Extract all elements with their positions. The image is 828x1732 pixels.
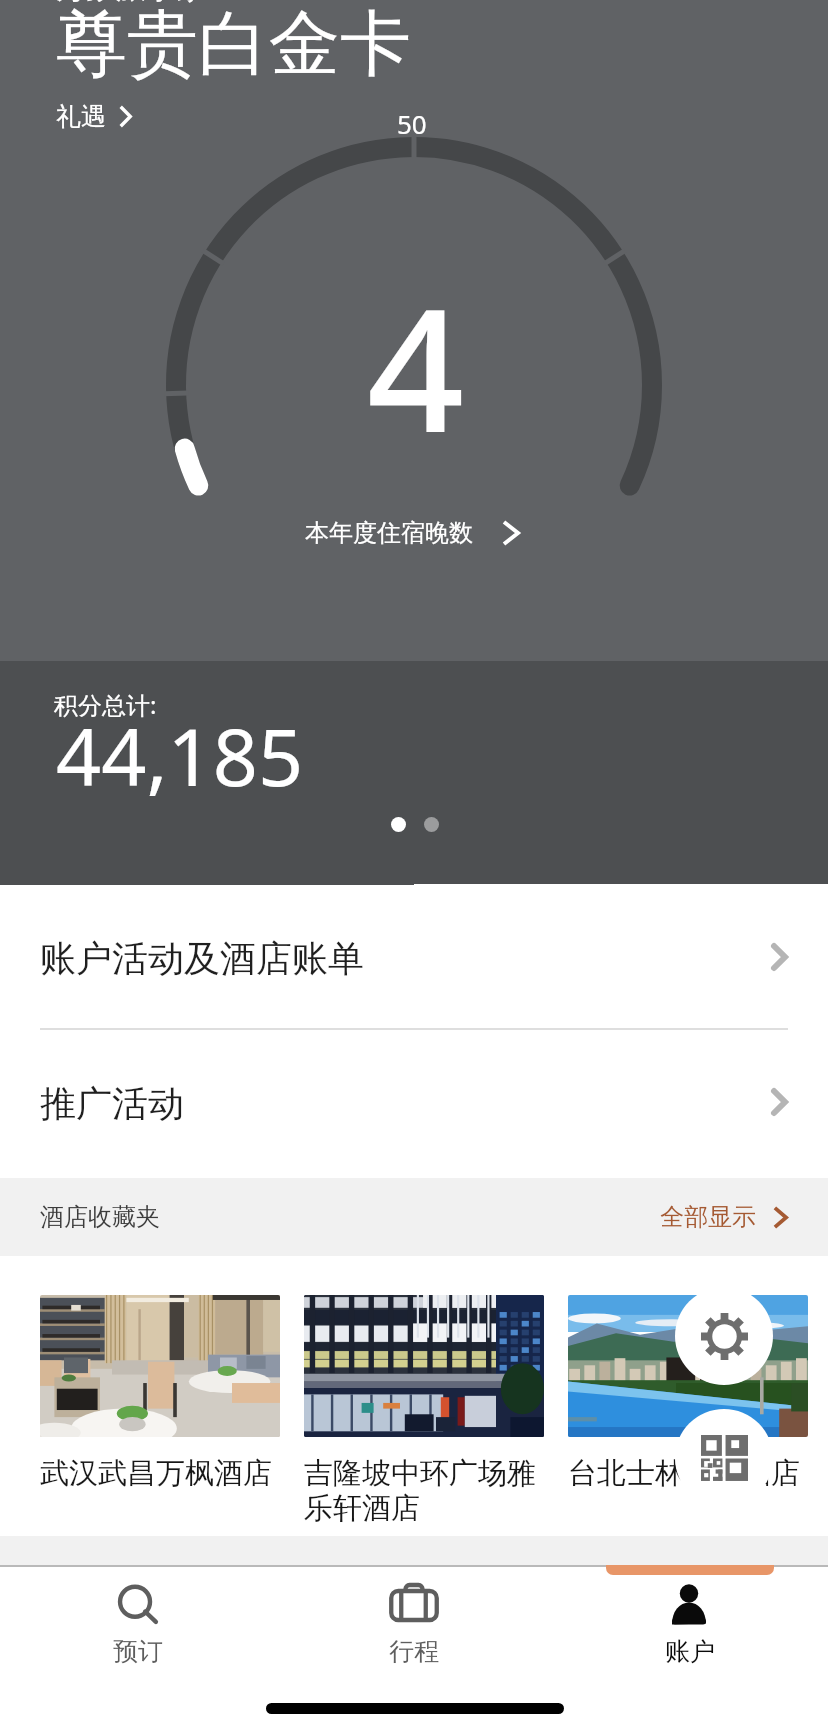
button[interactable]: 账户 bbox=[552, 1578, 828, 1668]
staticText: 推广活动 bbox=[40, 1081, 184, 1126]
staticText: 武汉武昌万枫酒店 bbox=[40, 1455, 320, 1492]
button[interactable]: 礼遇 bbox=[56, 97, 144, 136]
button[interactable]: 推广活动 bbox=[0, 1030, 828, 1173]
button[interactable]: Settings bbox=[675, 1287, 773, 1385]
staticText: 账户 bbox=[665, 1636, 715, 1667]
staticText: 台北士林万丽酒店 bbox=[568, 1455, 828, 1492]
staticText: 4 bbox=[367, 250, 465, 482]
button[interactable]: 账户活动及酒店账单 bbox=[0, 885, 828, 1028]
staticText: 积分总计: bbox=[54, 688, 157, 721]
staticText: 吉隆坡中环广场雅乐轩酒店 bbox=[304, 1455, 554, 1527]
staticText: 行程 bbox=[389, 1636, 439, 1667]
staticText: 44,185 bbox=[56, 702, 304, 810]
button[interactable]: 行程 bbox=[276, 1578, 552, 1668]
staticText: 本年度住宿晚数 bbox=[305, 518, 473, 548]
staticText: 账户活动及酒店账单 bbox=[40, 936, 364, 981]
button[interactable]: Scan QR code bbox=[675, 1409, 773, 1507]
button[interactable]: 预订 bbox=[0, 1578, 276, 1668]
staticText: 礼遇 bbox=[56, 101, 106, 132]
staticText: 50 bbox=[397, 106, 427, 141]
staticText: 酒店收藏夹 bbox=[40, 1202, 160, 1232]
staticText: 全部显示 bbox=[660, 1202, 756, 1232]
button[interactable]: 台北士林万丽酒店 bbox=[568, 1295, 808, 1492]
button[interactable]: 本年度住宿晚数 bbox=[305, 514, 520, 552]
button[interactable]: 武汉武昌万枫酒店 bbox=[40, 1295, 280, 1492]
staticText: 万豪旅享家® bbox=[56, 0, 231, 7]
button[interactable]: 吉隆坡中环广场雅乐轩酒店 bbox=[304, 1295, 544, 1527]
staticText: 尊贵白金卡 bbox=[56, 0, 411, 89]
button[interactable]: 全部显示 bbox=[660, 1196, 788, 1238]
staticText: 预订 bbox=[113, 1636, 163, 1667]
